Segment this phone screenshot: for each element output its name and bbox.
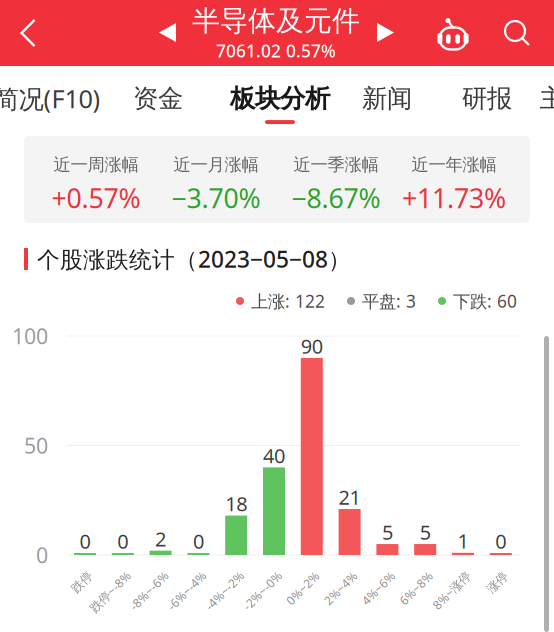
staticText: 6%~8% xyxy=(395,580,436,596)
button[interactable]: 资金 xyxy=(133,66,183,124)
staticText: 90 xyxy=(301,333,323,359)
staticText: -2%~-0% xyxy=(238,583,287,599)
staticText: 7061.02 0.57% xyxy=(216,39,336,62)
staticText: 近一周涨幅 xyxy=(53,154,138,175)
staticText: 板块分析 xyxy=(230,83,330,114)
staticText: 2%~4% xyxy=(320,580,361,596)
staticText: 上涨: 122 xyxy=(251,289,325,312)
button[interactable]: Search xyxy=(487,0,547,66)
button[interactable]: 新闻 xyxy=(362,66,412,124)
staticText: 研报 xyxy=(462,83,512,114)
staticText: -6%~-4% xyxy=(162,583,211,599)
staticText: 8%~涨停 xyxy=(428,582,476,598)
button[interactable]: Back xyxy=(0,0,56,66)
staticText: -4%~-2% xyxy=(200,583,249,599)
button[interactable]: 简况(F10) xyxy=(0,66,100,124)
staticText: 5 xyxy=(420,519,431,545)
button[interactable]: 主 xyxy=(537,66,554,124)
staticText: -8%~-6% xyxy=(124,583,173,599)
staticText: 0 xyxy=(117,528,128,554)
staticText: 近一季涨幅 xyxy=(293,154,378,175)
staticText: 40 xyxy=(263,442,285,469)
button[interactable]: 板块分析 xyxy=(230,66,330,124)
staticText: 21 xyxy=(339,484,361,510)
staticText: 1 xyxy=(457,527,468,554)
staticText: 2 xyxy=(155,525,166,552)
staticText: 4%~6% xyxy=(358,580,399,596)
staticText: 近一月涨幅 xyxy=(173,154,258,175)
staticText: 下跌: 60 xyxy=(453,289,517,312)
staticText: 平盘: 3 xyxy=(362,289,416,312)
button[interactable]: Assistant xyxy=(419,0,487,66)
button[interactable]: Next sector xyxy=(364,5,408,61)
staticText: +0.57% xyxy=(51,180,140,216)
button[interactable]: Previous sector xyxy=(146,5,190,61)
staticText: 涨停 xyxy=(485,575,509,590)
staticText: 50 xyxy=(24,431,48,460)
staticText: 个股涨跌统计（2023−05−08） xyxy=(37,244,351,274)
staticText: 0 xyxy=(79,528,90,554)
staticText: 近一年涨幅 xyxy=(411,154,496,175)
staticText: 资金 xyxy=(133,83,183,114)
staticText: 新闻 xyxy=(362,83,412,114)
staticText: 半导体及元件 xyxy=(192,4,360,38)
staticText: 0 xyxy=(495,528,506,554)
staticText: −3.70% xyxy=(171,180,260,216)
staticText: 0 xyxy=(193,528,204,554)
staticText: 0 xyxy=(36,541,48,569)
staticText: 主 xyxy=(539,83,554,114)
staticText: 跌停~-8% xyxy=(84,584,136,600)
button[interactable]: 研报 xyxy=(462,66,512,124)
staticText: 简况(F10) xyxy=(0,82,100,115)
staticText: 18 xyxy=(225,490,247,517)
staticText: 100 xyxy=(12,322,48,350)
staticText: 0%~2% xyxy=(282,580,323,596)
staticText: +11.73% xyxy=(402,180,506,216)
staticText: 5 xyxy=(382,519,393,545)
staticText: −8.67% xyxy=(291,180,380,216)
staticText: 跌停 xyxy=(70,575,94,589)
